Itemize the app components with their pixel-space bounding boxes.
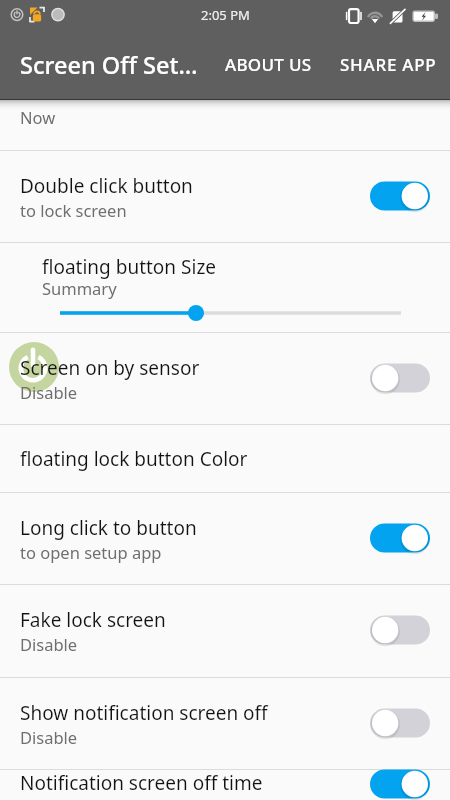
button[interactable]: Switch off xyxy=(362,355,438,401)
staticText: Disable xyxy=(20,633,78,655)
button[interactable]: Show notification screen off xyxy=(0,678,450,769)
button[interactable]: floating button Size xyxy=(0,243,450,332)
button[interactable]: Long click to button xyxy=(0,493,450,584)
button[interactable]: Switch off xyxy=(362,607,438,653)
staticText: Disable xyxy=(20,726,78,748)
button[interactable]: SHARE APP xyxy=(326,41,450,88)
staticText: Double click button xyxy=(20,173,193,199)
staticText: to lock screen xyxy=(20,199,127,221)
button[interactable]: Double click button xyxy=(0,151,450,242)
button[interactable]: Screen off time xyxy=(0,58,450,150)
button[interactable]: Screen on by sensor xyxy=(0,333,450,424)
staticText: to open setup app xyxy=(20,541,162,563)
staticText: floating button Size xyxy=(42,254,217,280)
staticText: Notification screen off time xyxy=(20,770,263,796)
staticText: Disable xyxy=(20,381,78,403)
staticText: floating lock button Color xyxy=(20,446,248,472)
staticText: Fake lock screen xyxy=(20,607,166,633)
button[interactable]: Fake lock screen xyxy=(0,585,450,677)
button[interactable]: Switch on xyxy=(362,769,438,799)
staticText: Screen on by sensor xyxy=(20,355,200,381)
button[interactable]: Notification screen off time xyxy=(0,770,450,800)
button[interactable]: Floating lock button xyxy=(9,342,59,392)
staticText: ABOUT US xyxy=(225,53,312,76)
button[interactable]: Switch on xyxy=(362,173,438,219)
button[interactable]: Switch on xyxy=(362,515,438,561)
staticText: Screen off time xyxy=(20,80,155,106)
button[interactable]: floating lock button Color xyxy=(0,425,450,492)
staticText: Long click to button xyxy=(20,515,197,541)
staticText: Screen Off Set… xyxy=(20,49,198,81)
button[interactable]: Switch off xyxy=(362,700,438,746)
staticText: Now xyxy=(20,106,56,128)
staticText: Summary xyxy=(42,277,117,299)
staticText: Show notification screen off xyxy=(20,700,268,726)
button[interactable]: ABOUT US xyxy=(211,41,326,88)
staticText: SHARE APP xyxy=(340,53,437,76)
staticText: 2:05 PM xyxy=(201,6,250,24)
